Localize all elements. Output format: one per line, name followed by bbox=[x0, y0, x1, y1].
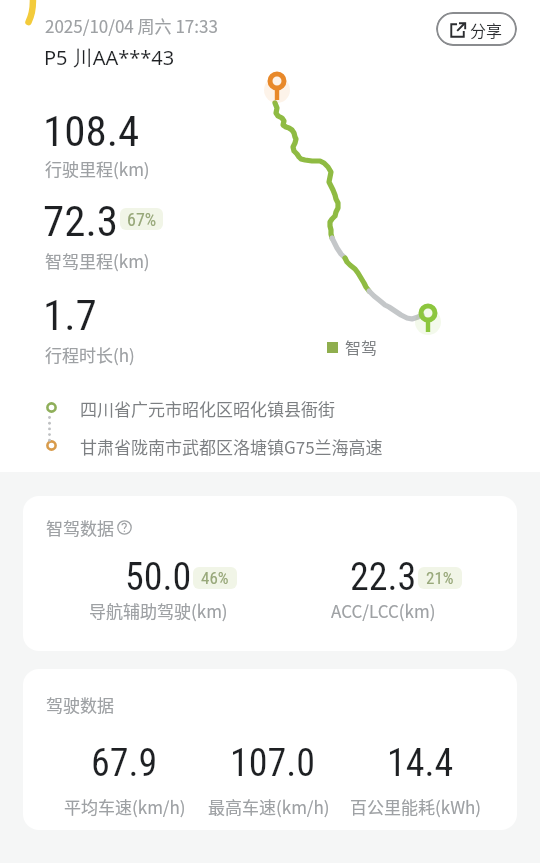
staticText: 最高车速(km/h) bbox=[208, 794, 330, 819]
staticText: 22.3 bbox=[350, 555, 417, 600]
staticText: 导航辅助驾驶(km) bbox=[89, 598, 228, 623]
other: Share bbox=[450, 22, 466, 38]
staticText: 行驶里程(km) bbox=[45, 156, 150, 181]
staticText: 14.4 bbox=[387, 741, 454, 786]
button[interactable]: Share bbox=[436, 12, 517, 46]
staticText: P5 川AA***43 bbox=[44, 44, 175, 71]
staticText: 百公里能耗(kWh) bbox=[350, 794, 482, 819]
staticText: 驾驶数据 bbox=[46, 692, 114, 717]
staticText: 甘肃省陇南市武都区洛塘镇G75兰海高速 bbox=[80, 434, 383, 459]
staticText: 智驾 bbox=[345, 335, 378, 358]
button[interactable]: 四川省广元市昭化区昭化镇县衙街 bbox=[40, 393, 500, 423]
staticText: 46% bbox=[201, 568, 229, 588]
staticText: 1.7 bbox=[43, 290, 97, 340]
staticText: 72.3 bbox=[43, 196, 119, 246]
button[interactable]: 甘肃省陇南市武都区洛塘镇G75兰海高速 bbox=[40, 431, 500, 461]
staticText: 50.0 bbox=[125, 555, 192, 600]
staticText: 67% bbox=[127, 209, 157, 230]
staticText: 67.9 bbox=[91, 741, 158, 786]
staticText: 平均车速(km/h) bbox=[64, 794, 186, 819]
staticText: 行程时长(h) bbox=[45, 342, 135, 367]
staticText: 智驾里程(km) bbox=[45, 248, 150, 273]
staticText: 智驾数据 bbox=[46, 515, 114, 540]
staticText: 21% bbox=[426, 568, 454, 588]
staticText: 分享 bbox=[470, 18, 503, 41]
staticText: 四川省广元市昭化区昭化镇县衙街 bbox=[80, 396, 335, 421]
button[interactable]: 智驾数据 bbox=[46, 515, 132, 540]
staticText: 2025/10/04 周六 17:33 bbox=[45, 13, 218, 38]
staticText: ACC/LCC(km) bbox=[331, 598, 436, 623]
staticText: 108.4 bbox=[43, 106, 140, 156]
staticText: 107.0 bbox=[230, 741, 316, 786]
